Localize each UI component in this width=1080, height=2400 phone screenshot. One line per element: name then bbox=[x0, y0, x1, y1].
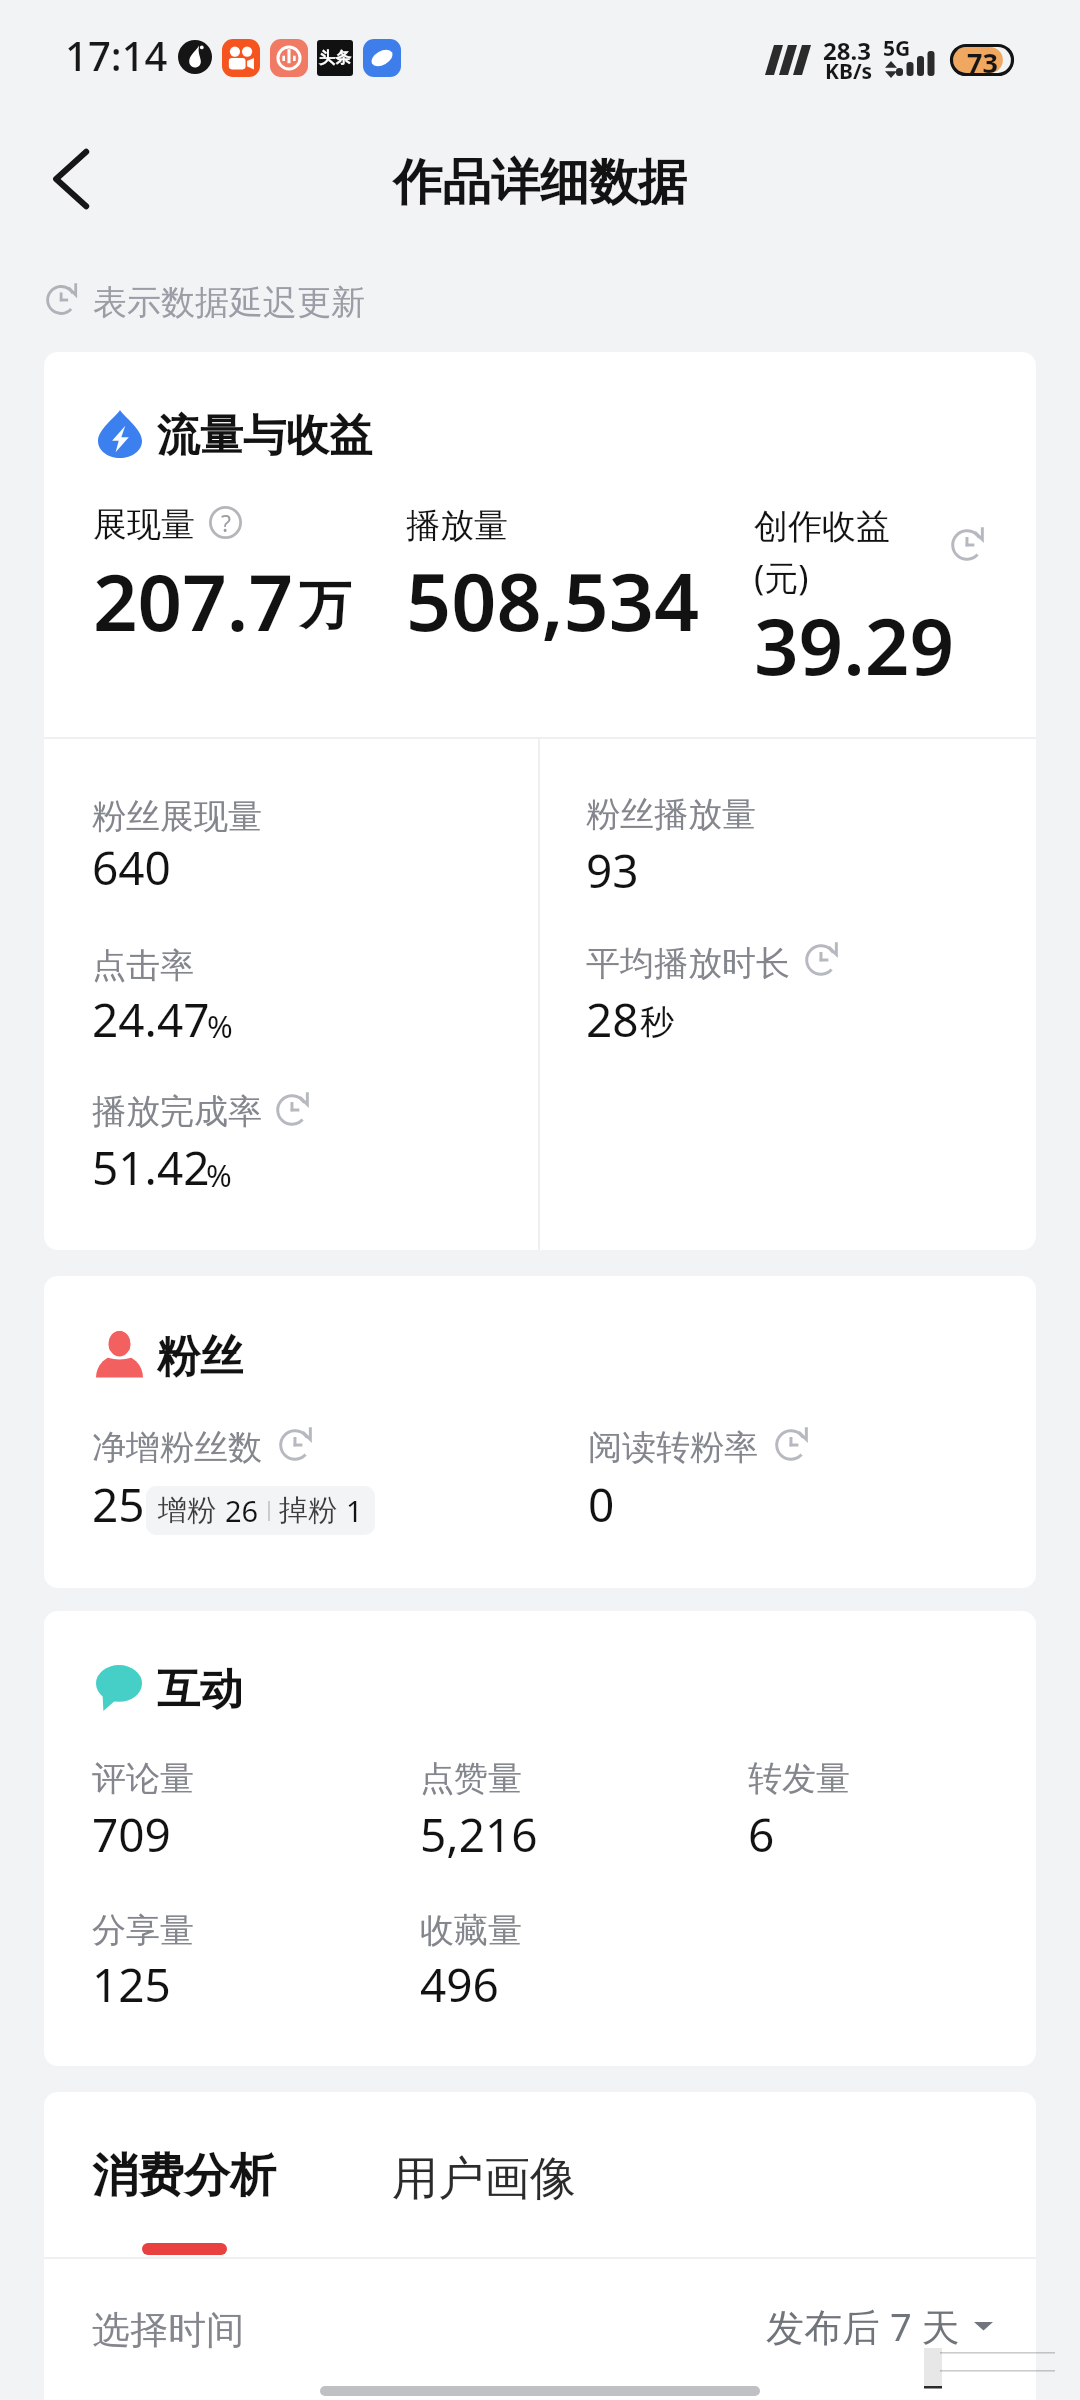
staticText: 51.42 bbox=[92, 1136, 210, 1199]
staticText: 万 bbox=[299, 573, 351, 639]
staticText: 5,216 bbox=[420, 1803, 538, 1866]
staticText: 创作收益 bbox=[754, 505, 890, 548]
staticText: 73 bbox=[967, 44, 998, 76]
button[interactable]: What is impressions? bbox=[209, 506, 242, 539]
staticText: 播放量 bbox=[406, 504, 508, 547]
staticText: 收藏量 bbox=[420, 1909, 522, 1952]
staticText: 评论量 bbox=[92, 1757, 194, 1800]
staticText: 点击率 bbox=[92, 944, 194, 987]
staticText: 掉粉 bbox=[279, 1492, 337, 1529]
staticText: KB/s bbox=[825, 57, 873, 86]
staticText: 分享量 bbox=[92, 1909, 194, 1952]
staticText: 净增粉丝数 bbox=[92, 1426, 262, 1469]
staticText: 28 bbox=[586, 988, 639, 1051]
staticText: 5G bbox=[883, 34, 911, 63]
staticText: 26 bbox=[225, 1491, 259, 1530]
staticText: 转发量 bbox=[748, 1757, 850, 1800]
staticText: 展现量 bbox=[93, 503, 195, 546]
staticText: 39.29 bbox=[754, 592, 954, 698]
staticText: 207.7 bbox=[93, 548, 293, 654]
staticText: 496 bbox=[420, 1953, 499, 2016]
staticText: 选择时间 bbox=[92, 2306, 244, 2354]
staticText: 阅读转粉率 bbox=[588, 1426, 758, 1469]
staticText: % bbox=[207, 1005, 233, 1047]
staticText: 25 bbox=[92, 1473, 145, 1536]
staticText: 用户画像 bbox=[392, 2150, 576, 2208]
staticText: 粉丝 bbox=[157, 1330, 243, 1384]
staticText: 平均播放时长 bbox=[586, 942, 790, 985]
staticText: 秒 bbox=[640, 1001, 674, 1044]
staticText: 粉丝播放量 bbox=[586, 793, 756, 836]
staticText: 508,534 bbox=[406, 547, 700, 655]
staticText: 28.3 bbox=[823, 34, 871, 67]
staticText: (元) bbox=[754, 554, 809, 600]
button[interactable]: 消费分析 bbox=[70, 2118, 300, 2257]
staticText: 作品详细数据 bbox=[393, 152, 687, 214]
staticText: 增粉 bbox=[158, 1492, 216, 1529]
button[interactable]: 用户画像 bbox=[300, 2118, 600, 2257]
staticText: ? bbox=[221, 507, 231, 538]
staticText: 709 bbox=[92, 1803, 171, 1866]
staticText: 播放完成率 bbox=[92, 1090, 262, 1133]
staticText: 表示数据延迟更新 bbox=[93, 281, 365, 324]
staticText: 粉丝展现量 bbox=[92, 795, 262, 838]
staticText: 17:14 bbox=[65, 28, 168, 82]
staticText: 头条 bbox=[319, 48, 351, 68]
staticText: 点赞量 bbox=[420, 1757, 522, 1800]
staticText: 0 bbox=[588, 1473, 615, 1536]
staticText: 流量与收益 bbox=[157, 409, 372, 463]
staticText: 24.47 bbox=[92, 988, 210, 1051]
staticText: 640 bbox=[92, 836, 171, 899]
staticText: 发布后 7 天 bbox=[766, 2300, 960, 2352]
staticText: % bbox=[206, 1154, 232, 1196]
staticText: 1 bbox=[346, 1491, 363, 1530]
staticText: 93 bbox=[586, 839, 639, 902]
button[interactable]: 发布后 7 天 bbox=[766, 2300, 993, 2352]
button[interactable]: Back bbox=[21, 125, 129, 233]
staticText: 互动 bbox=[157, 1663, 243, 1717]
staticText: 6 bbox=[748, 1803, 775, 1866]
staticText: 125 bbox=[92, 1953, 171, 2016]
staticText: 消费分析 bbox=[92, 2147, 276, 2205]
